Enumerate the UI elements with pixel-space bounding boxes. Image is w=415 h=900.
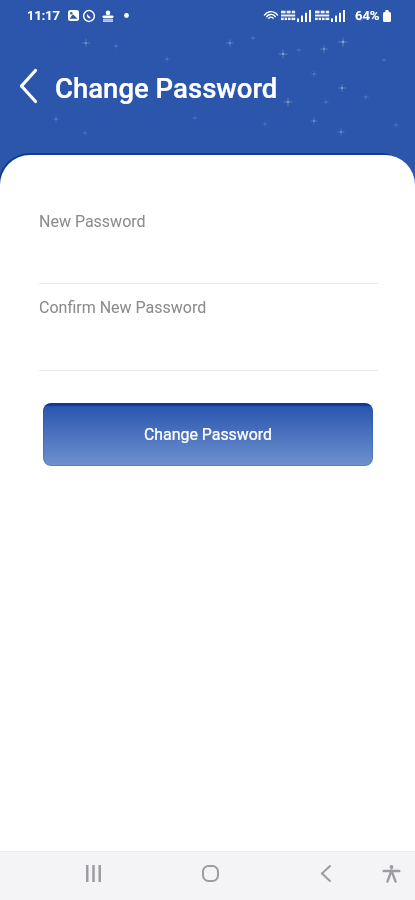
button[interactable]: Change Password [43, 403, 373, 466]
staticText: Change Password [55, 72, 278, 104]
button[interactable]: Home [186, 851, 234, 900]
staticText: Confirm New Password [39, 298, 207, 317]
staticText: New Password [39, 212, 146, 231]
button[interactable]: New Password [39, 212, 378, 258]
button[interactable]: Back [302, 851, 350, 900]
button[interactable]: Back [7, 65, 49, 107]
staticText: Change Password [144, 425, 272, 444]
button[interactable]: Accessibility [367, 851, 415, 900]
button[interactable]: Confirm New Password [39, 298, 378, 344]
staticText: 64% [355, 8, 380, 23]
staticText: 11:17 [27, 8, 61, 23]
button[interactable]: Recent apps [69, 851, 117, 900]
